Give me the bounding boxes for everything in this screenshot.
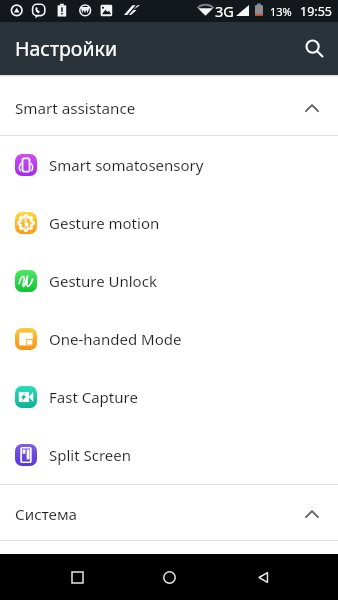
staticText: Система (15, 504, 78, 525)
staticText: Split Screen (49, 445, 132, 465)
button[interactable]: Gesture Unlock (0, 252, 338, 310)
button[interactable]: One-handed Mode (0, 310, 338, 368)
button[interactable]: Back (241, 555, 285, 599)
staticText: Gesture motion (49, 213, 160, 233)
button[interactable]: Search (293, 27, 337, 71)
staticText: 3G (215, 1, 234, 21)
button[interactable]: Smart assistance (0, 78, 338, 135)
staticText: Smart assistance (15, 98, 136, 119)
button[interactable]: Recent apps (55, 555, 99, 599)
staticText: Настройки (15, 35, 118, 62)
staticText: One-handed Mode (49, 329, 182, 349)
staticText: 19:55 (300, 3, 332, 20)
button[interactable]: Gesture motion (0, 194, 338, 252)
staticText: Fast Capture (49, 387, 138, 407)
button[interactable]: Home (147, 555, 191, 599)
button[interactable]: Smart somatosensory (0, 136, 338, 194)
staticText: Smart somatosensory (49, 155, 204, 175)
button[interactable]: Split Screen (0, 426, 338, 484)
button[interactable]: Система (0, 485, 338, 540)
staticText: 13% (270, 4, 292, 19)
button[interactable]: Fast Capture (0, 368, 338, 426)
staticText: Gesture Unlock (49, 271, 157, 291)
